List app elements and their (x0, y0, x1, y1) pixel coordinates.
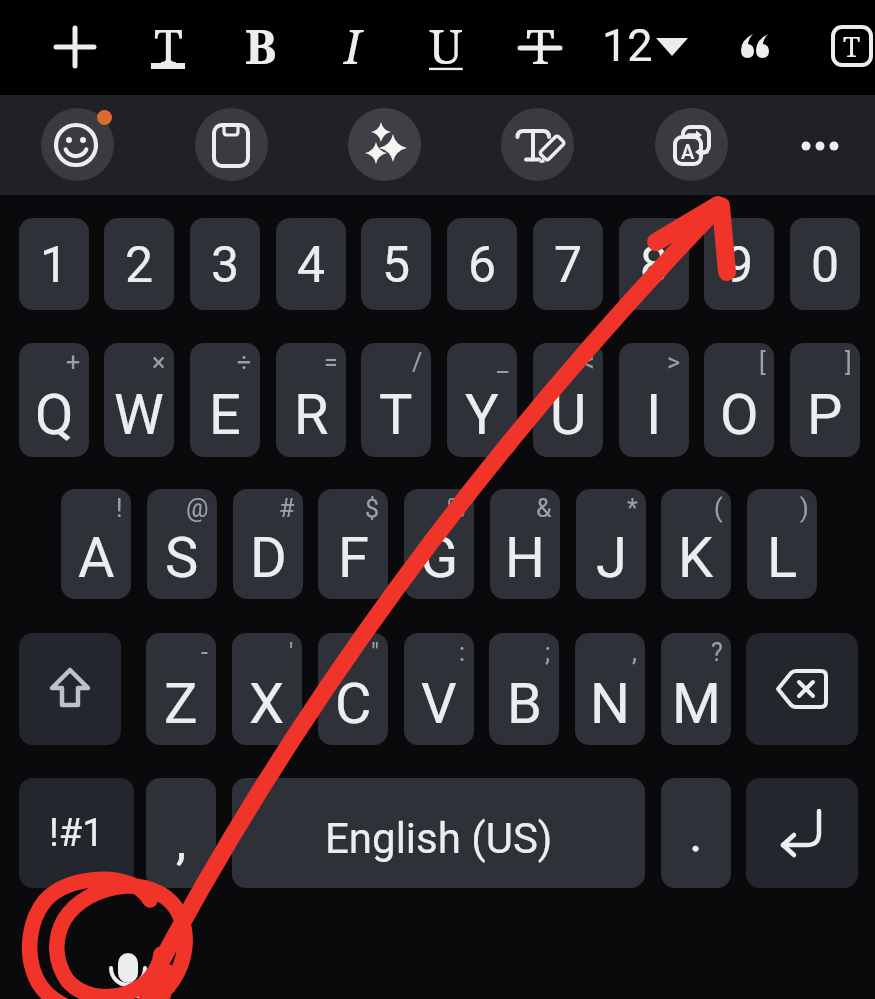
staticText: ? (711, 638, 723, 667)
staticText: 12 (602, 19, 653, 72)
button[interactable]: = (276, 343, 346, 457)
button[interactable]: B (233, 14, 289, 80)
button[interactable]: , (146, 778, 216, 888)
button[interactable]: 2 (104, 218, 174, 310)
button[interactable]: ! (61, 489, 131, 599)
staticText: L (767, 525, 798, 591)
button[interactable] (501, 108, 574, 181)
button[interactable]: [ (704, 343, 774, 457)
staticText: * (627, 494, 638, 523)
button[interactable]: ; (489, 633, 559, 745)
staticText: × (152, 348, 166, 377)
button[interactable]: 8 (619, 218, 689, 310)
button[interactable]: 5 (361, 218, 431, 310)
button[interactable]: U (418, 14, 474, 80)
button[interactable]: 4 (276, 218, 346, 310)
staticText: F (338, 525, 369, 591)
button[interactable] (731, 14, 783, 80)
button[interactable]: 0 (790, 218, 860, 310)
button[interactable]: 7 (533, 218, 603, 310)
staticText: ( (714, 494, 723, 523)
staticText: W (114, 382, 164, 448)
button[interactable]: < (533, 343, 603, 457)
button[interactable]: T (140, 14, 196, 80)
button[interactable]: × (104, 343, 174, 457)
button[interactable]: " (318, 633, 388, 745)
staticText: 2 (125, 236, 154, 295)
staticText: J (596, 525, 627, 591)
button[interactable] (19, 633, 121, 745)
staticText: . (689, 803, 703, 864)
staticText: % (447, 494, 466, 523)
button[interactable]: $ (318, 489, 388, 599)
button[interactable]: + (19, 343, 89, 457)
button[interactable]: I (325, 14, 381, 80)
button[interactable]: , (575, 633, 645, 745)
button[interactable]: @ (147, 489, 217, 599)
button[interactable]: ' (232, 633, 302, 745)
staticText: C (335, 671, 372, 737)
button[interactable] (790, 130, 852, 162)
button[interactable] (746, 633, 858, 745)
staticText: ! (116, 494, 123, 523)
staticText: U (550, 382, 587, 448)
staticText: @ (186, 494, 209, 523)
staticText: 5 (382, 236, 411, 295)
staticText: T (379, 382, 413, 448)
button[interactable]: !#1 (19, 778, 134, 888)
staticText: 3 (211, 236, 240, 295)
button[interactable]: # (233, 489, 303, 599)
staticText: 0 (811, 236, 840, 295)
button[interactable]: 1 (19, 218, 89, 310)
button[interactable]: T (512, 14, 568, 80)
staticText: 7 (554, 236, 583, 295)
button[interactable] (41, 108, 114, 181)
staticText: B (245, 14, 277, 78)
button[interactable]: ( (661, 489, 731, 599)
button[interactable]: / (361, 343, 431, 457)
button[interactable]: 3 (190, 218, 260, 310)
staticText: T (526, 14, 555, 78)
button[interactable]: ] (790, 343, 860, 457)
staticText: & (536, 494, 552, 523)
button[interactable]: 12 (600, 14, 710, 80)
button[interactable]: % (404, 489, 474, 599)
staticText: S (165, 525, 199, 591)
button[interactable]: ÷ (190, 343, 260, 457)
button[interactable] (47, 19, 103, 75)
staticText: ; (545, 638, 551, 667)
staticText: 8 (640, 236, 669, 295)
staticText: + (66, 348, 81, 377)
staticText: [ (759, 348, 766, 377)
button[interactable]: T (831, 25, 873, 67)
button[interactable]: _ (447, 343, 517, 457)
staticText: = (324, 348, 338, 377)
button[interactable]: . (661, 778, 731, 888)
button[interactable]: * (576, 489, 646, 599)
staticText: 1 (40, 236, 69, 295)
button[interactable]: A (655, 108, 728, 181)
staticText: R (294, 382, 329, 448)
button[interactable]: 9 (704, 218, 774, 310)
staticText: _ (497, 348, 509, 377)
staticText: ] (845, 348, 852, 377)
button[interactable] (348, 108, 421, 181)
button[interactable] (100, 940, 156, 999)
button[interactable]: English (US) (232, 778, 645, 888)
button[interactable] (746, 778, 858, 888)
button[interactable]: ? (661, 633, 731, 745)
staticText: - (201, 638, 208, 667)
button[interactable]: - (146, 633, 216, 745)
button[interactable] (195, 108, 268, 181)
button[interactable]: 6 (447, 218, 517, 310)
staticText: , (176, 811, 187, 872)
button[interactable]: ) (747, 489, 817, 599)
staticText: 4 (297, 236, 326, 295)
staticText: P (807, 382, 843, 448)
staticText: I (344, 14, 362, 78)
staticText: ÷ (237, 348, 252, 377)
button[interactable]: > (619, 343, 689, 457)
button[interactable]: & (490, 489, 560, 599)
staticText: M (672, 671, 721, 737)
button[interactable]: : (404, 633, 474, 745)
